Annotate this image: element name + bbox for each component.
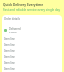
- staticText: Item line: [4, 55, 15, 59]
- staticText: Delivered: [9, 27, 21, 31]
- staticText: Item line: [4, 43, 15, 47]
- staticText: 2 items: [9, 31, 17, 34]
- staticText: Item line: [4, 37, 15, 41]
- staticText: Item line: [4, 61, 15, 65]
- staticText: Item line: [4, 49, 15, 53]
- staticText: Item line: [4, 67, 15, 71]
- staticText: Quick Delivery Everytime: [3, 3, 44, 7]
- staticText: Fast and reliable service every single d…: [3, 8, 61, 12]
- staticText: Order details: [4, 17, 20, 21]
